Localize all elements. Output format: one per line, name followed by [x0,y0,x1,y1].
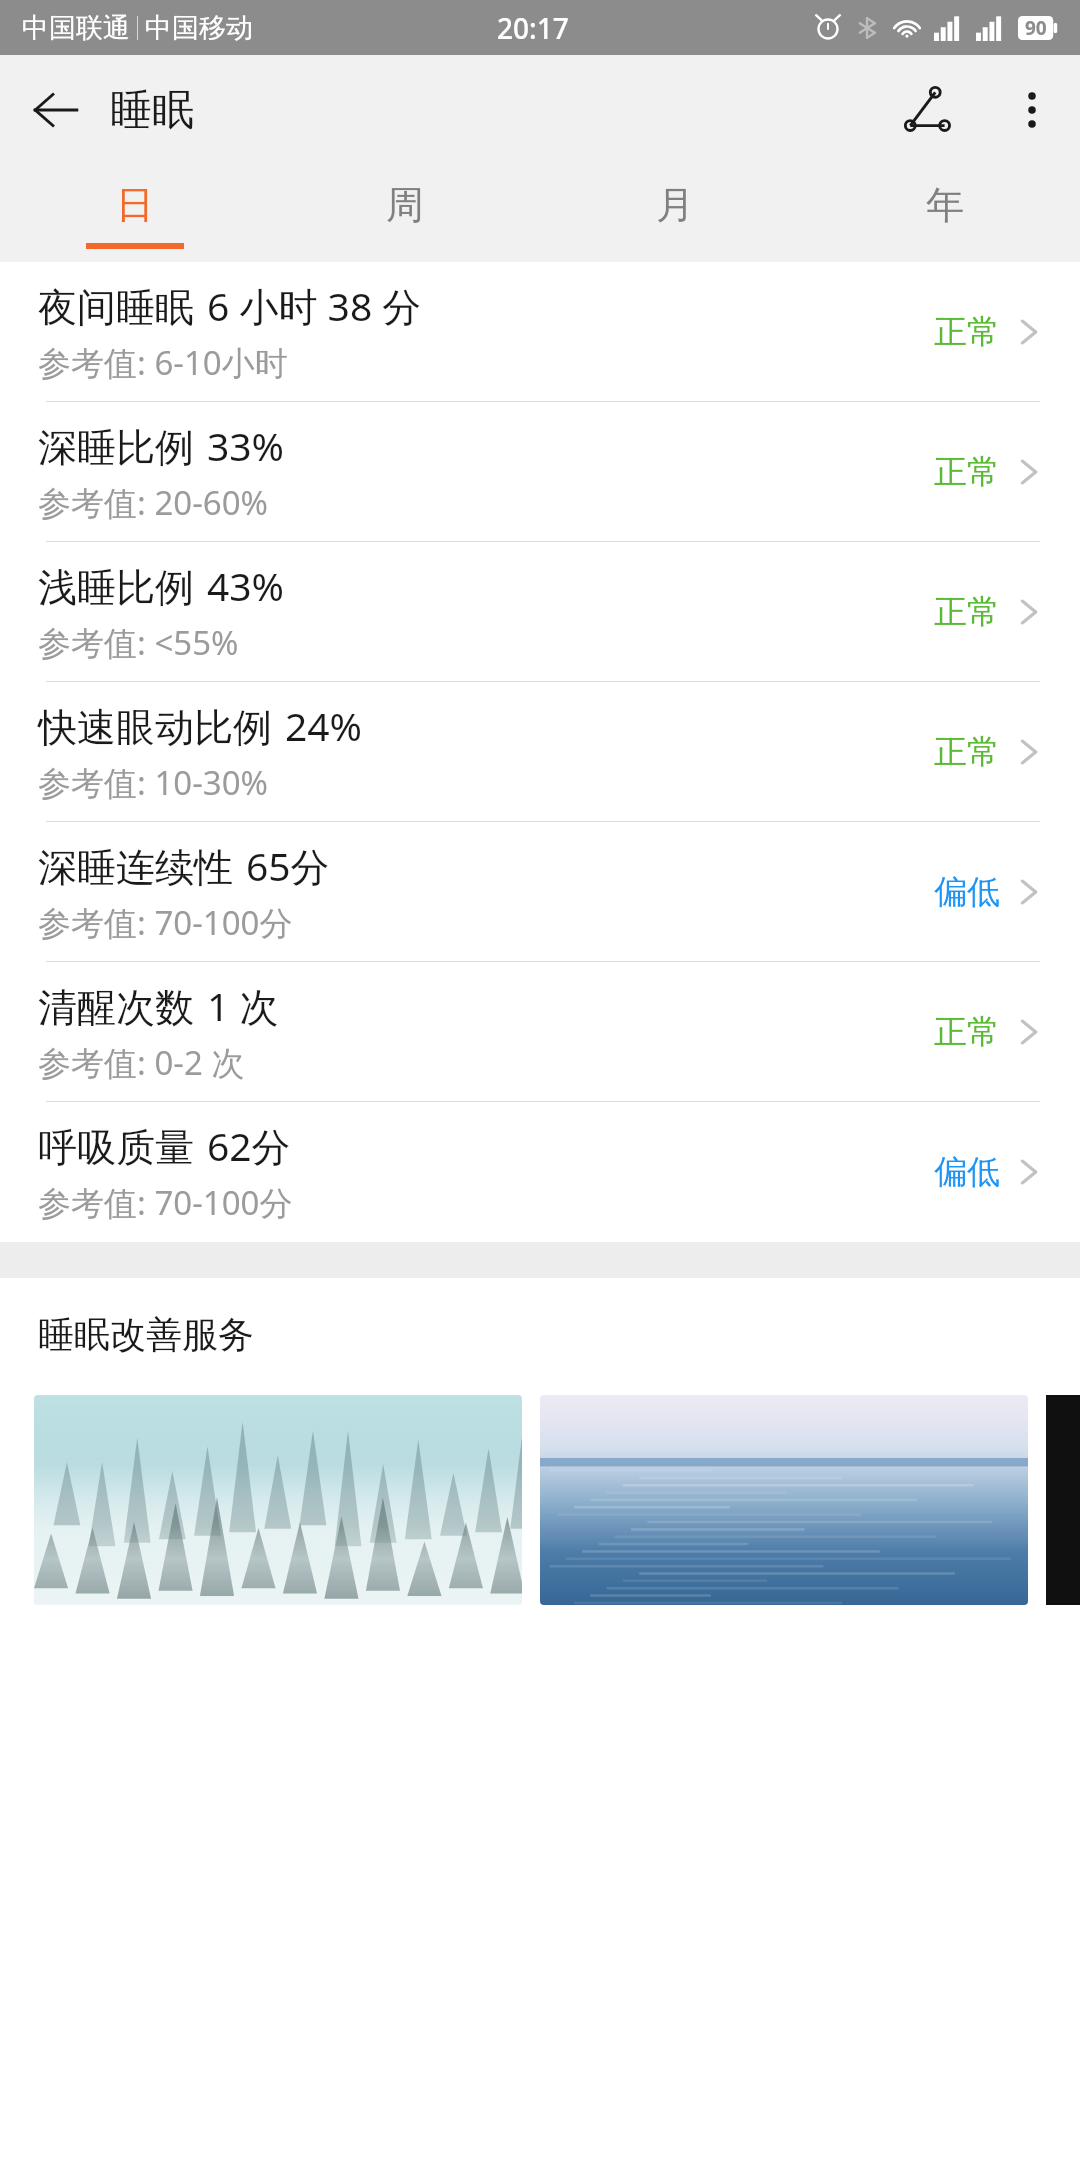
staticText: 中国联通 [22,11,130,45]
staticText: 清醒次数 [38,983,194,1032]
staticText: 24% [285,699,363,752]
staticText: 33% [207,419,285,472]
staticText: 参考值: 10-30% [38,760,268,805]
button[interactable]: 呼吸质量 [0,1102,1080,1242]
button[interactable]: More options [984,62,1080,158]
staticText: 年 [926,181,964,229]
staticText: 20:17 [497,9,569,47]
staticText: 正常 [934,591,1000,633]
staticText: 正常 [934,731,1000,773]
button[interactable]: 年 [810,165,1080,262]
staticText: 偏低 [934,871,1000,913]
button[interactable]: Back [0,55,110,165]
staticText: 深睡连续性 [38,843,233,892]
staticText: 浅睡比例 [38,563,194,612]
staticText: 正常 [934,1011,1000,1053]
button[interactable]: 深睡连续性 [0,822,1080,962]
button[interactable]: 周 [270,165,540,262]
button[interactable] [34,1395,522,1605]
button[interactable]: 日 [0,165,270,262]
button[interactable]: 快速眼动比例 [0,682,1080,822]
staticText: 参考值: 0-2 次 [38,1040,245,1085]
staticText: 90 [1025,15,1047,41]
button[interactable]: 深睡比例 [0,402,1080,542]
button[interactable] [540,1395,1028,1605]
staticText: 65分 [246,839,330,892]
staticText: 参考值: <55% [38,620,239,665]
staticText: 快速眼动比例 [38,703,272,752]
button[interactable]: 清醒次数 [0,962,1080,1102]
staticText: 睡眠 [110,84,194,137]
staticText: 1 次 [207,979,279,1032]
staticText: 日 [116,181,154,229]
staticText: 周 [386,181,424,229]
staticText: 睡眠改善服务 [38,1312,254,1357]
staticText: 62分 [207,1119,291,1172]
staticText: 偏低 [934,1151,1000,1193]
staticText: 夜间睡眠 [38,283,194,332]
button[interactable]: Share [874,55,984,165]
staticText: 中国移动 [145,11,253,45]
button[interactable]: 浅睡比例 [0,542,1080,682]
staticText: 43% [207,559,285,612]
staticText: 深睡比例 [38,423,194,472]
staticText: 正常 [934,451,1000,493]
staticText: 月 [656,181,694,229]
staticText: 参考值: 20-60% [38,480,268,525]
button[interactable]: 夜间睡眠 [0,262,1080,402]
staticText: 正常 [934,311,1000,353]
button[interactable]: 月 [540,165,810,262]
staticText: 参考值: 6-10小时 [38,340,288,385]
staticText: 参考值: 70-100分 [38,1180,293,1225]
staticText: 6 小时 38 分 [207,279,422,332]
staticText: 参考值: 70-100分 [38,900,293,945]
staticText: 呼吸质量 [38,1123,194,1172]
